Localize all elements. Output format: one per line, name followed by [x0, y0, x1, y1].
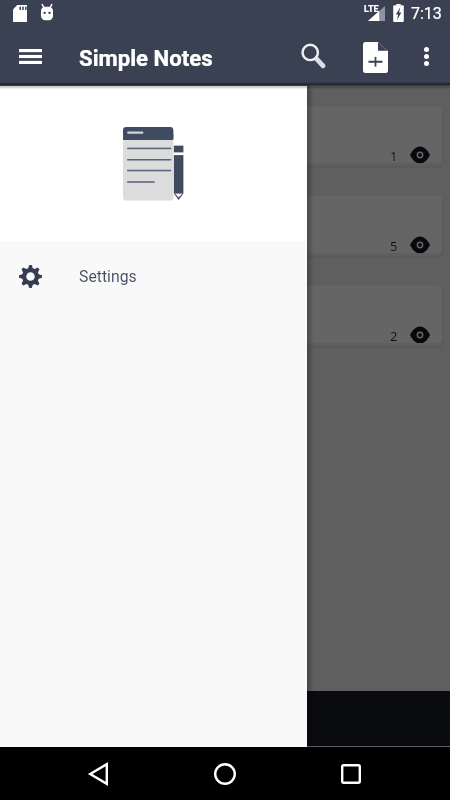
button[interactable]: Search — [291, 34, 337, 80]
button[interactable]: 2 — [8, 286, 442, 343]
staticText: Settings — [79, 267, 137, 286]
staticText: 7:13 — [411, 4, 442, 23]
staticText: 1 — [390, 147, 398, 163]
button[interactable]: Home — [195, 747, 255, 800]
button[interactable]: 5 — [8, 196, 442, 253]
staticText: LTE — [364, 4, 379, 15]
button[interactable]: 1 — [8, 106, 442, 163]
button[interactable]: Open navigation drawer — [6, 32, 54, 80]
staticText: Simple Notes — [79, 45, 213, 71]
button[interactable]: More options — [403, 33, 449, 79]
staticText: 2 — [390, 327, 398, 343]
button[interactable]: Recents — [321, 747, 381, 800]
button[interactable]: Settings — [0, 241, 307, 312]
button[interactable]: Back — [68, 747, 128, 800]
staticText: 5 — [390, 237, 398, 253]
button[interactable]: New note — [351, 33, 399, 81]
